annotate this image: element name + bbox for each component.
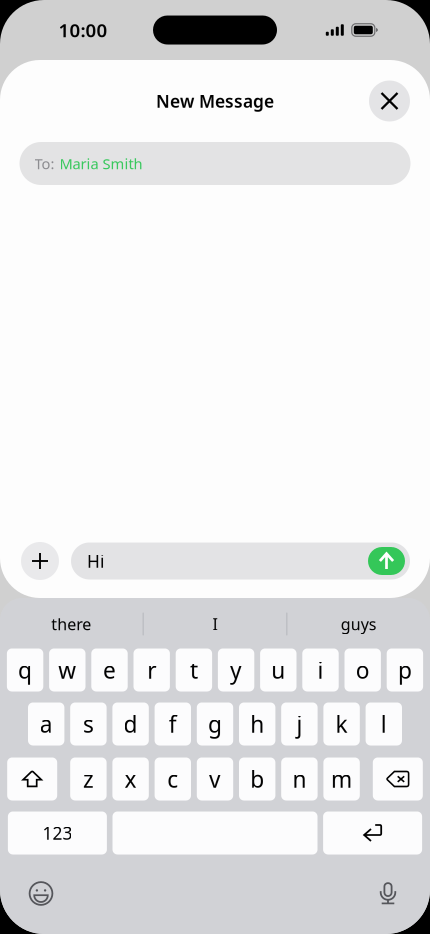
staticText: z: [83, 764, 94, 794]
staticText: x: [125, 764, 137, 794]
staticText: v: [209, 764, 221, 794]
staticText: l: [381, 709, 387, 739]
staticText: d: [124, 709, 138, 739]
staticText: I: [212, 613, 217, 635]
button[interactable]: h: [239, 702, 275, 745]
button[interactable]: Dictation: [366, 871, 410, 915]
staticText: s: [83, 709, 94, 739]
button[interactable]: w: [49, 648, 85, 691]
button[interactable]: j: [281, 702, 318, 745]
button[interactable]: t: [176, 648, 212, 691]
button[interactable]: l: [366, 702, 402, 745]
button[interactable]: g: [197, 702, 233, 745]
staticText: 10:00: [58, 18, 107, 42]
button[interactable]: c: [155, 757, 191, 800]
staticText: i: [317, 655, 323, 685]
button[interactable]: r: [133, 648, 170, 691]
staticText: a: [40, 709, 53, 739]
staticText: o: [356, 655, 370, 685]
button[interactable]: there: [0, 599, 143, 648]
staticText: m: [331, 764, 352, 794]
button[interactable]: guys: [287, 599, 430, 648]
button[interactable]: z: [70, 757, 107, 800]
staticText: there: [51, 613, 91, 635]
button[interactable]: Add attachment: [21, 542, 59, 580]
staticText: c: [167, 764, 178, 794]
button[interactable]: a: [28, 702, 64, 745]
button[interactable]: Shift: [7, 757, 57, 800]
staticText: Maria Smith: [59, 154, 142, 173]
staticText: k: [336, 709, 348, 739]
button[interactable]: f: [155, 702, 191, 745]
button[interactable]: d: [112, 702, 149, 745]
staticText: n: [292, 764, 306, 794]
button[interactable]: I: [144, 599, 286, 648]
staticText: Hi: [87, 549, 104, 572]
button[interactable]: s: [70, 702, 107, 745]
staticText: y: [230, 655, 242, 685]
staticText: r: [147, 655, 156, 685]
button[interactable]: i: [302, 648, 339, 691]
staticText: j: [296, 709, 302, 739]
staticText: t: [190, 655, 198, 685]
button[interactable]: v: [197, 757, 233, 800]
staticText: g: [208, 709, 222, 739]
staticText: To:: [34, 154, 54, 173]
button[interactable]: To:: [19, 142, 410, 185]
button[interactable]: 123: [8, 811, 107, 854]
button[interactable]: Send: [368, 547, 405, 575]
button[interactable]: x: [112, 757, 149, 800]
staticText: e: [103, 655, 116, 685]
staticText: u: [271, 655, 285, 685]
button[interactable]: o: [344, 648, 381, 691]
staticText: 123: [42, 821, 72, 844]
staticText: h: [250, 709, 264, 739]
button[interactable]: Emoji keyboard: [19, 871, 63, 915]
button[interactable]: p: [387, 648, 423, 691]
staticText: New Message: [156, 89, 274, 112]
staticText: b: [250, 764, 264, 794]
staticText: guys: [341, 613, 377, 635]
button[interactable]: q: [7, 648, 43, 691]
button[interactable]: u: [260, 648, 296, 691]
button[interactable]: e: [91, 648, 128, 691]
button[interactable]: m: [323, 757, 360, 800]
button[interactable]: Return: [323, 811, 422, 854]
button[interactable]: y: [218, 648, 254, 691]
staticText: p: [398, 655, 412, 685]
staticText: q: [18, 655, 32, 685]
staticText: w: [58, 655, 76, 685]
staticText: f: [169, 709, 177, 739]
button[interactable]: b: [239, 757, 275, 800]
button[interactable]: k: [323, 702, 360, 745]
button[interactable]: Close: [369, 80, 410, 121]
button[interactable]: Delete: [373, 757, 423, 800]
button[interactable]: n: [281, 757, 318, 800]
